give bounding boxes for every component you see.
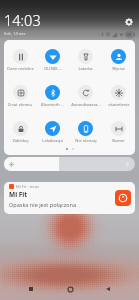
staticText: Mi Fit · teraz [16, 184, 39, 189]
staticText: oświetlenie [108, 102, 130, 107]
button[interactable]: Brightness [4, 157, 135, 171]
staticText: Wycisz [112, 66, 125, 71]
button[interactable]: Dane mobilne [4, 49, 36, 71]
staticText: Zablokuj [12, 138, 29, 143]
button[interactable]: OLINIX-... [36, 49, 69, 71]
staticText: Skaner [112, 138, 125, 143]
button[interactable]: Nie obracaj [69, 121, 102, 143]
staticText: Bluetooth ... [41, 102, 64, 107]
button[interactable]: Skaner [102, 121, 135, 143]
staticText: Dane mobilne [7, 66, 34, 71]
button[interactable]: Autoodtwarza... [69, 85, 102, 107]
staticText: Nie obracaj [75, 138, 97, 143]
staticText: Zrzut ekranu [8, 102, 32, 107]
button[interactable]: Mi Fit · teraz [4, 182, 135, 214]
staticText: 14:03 [4, 10, 41, 30]
button[interactable]: Settings [123, 16, 134, 27]
staticText: Lokalizacja [42, 138, 63, 143]
button[interactable]: Bluetooth ... [36, 85, 69, 107]
button[interactable]: Zablokuj [4, 121, 36, 143]
button[interactable]: oświetlenie [102, 85, 135, 107]
staticText: Autoodtwarza... [71, 102, 101, 107]
button[interactable]: Zrzut ekranu [4, 85, 36, 107]
button[interactable]: Mi Fit [115, 190, 131, 206]
staticText: Opaska nie jest połączona [9, 201, 77, 208]
button[interactable]: Lokalizacja [36, 121, 69, 143]
staticText: OLINIX-... [44, 66, 62, 71]
staticText: Mi Fit [9, 190, 28, 199]
staticText: Latarka [78, 66, 93, 71]
button[interactable]: Recents [23, 281, 39, 297]
button[interactable]: Back [100, 281, 116, 297]
button[interactable]: Latarka [69, 49, 102, 71]
button[interactable]: Wycisz [102, 49, 135, 71]
staticText: Sob, 14 wrz [4, 31, 26, 36]
button[interactable]: Home [62, 281, 78, 297]
